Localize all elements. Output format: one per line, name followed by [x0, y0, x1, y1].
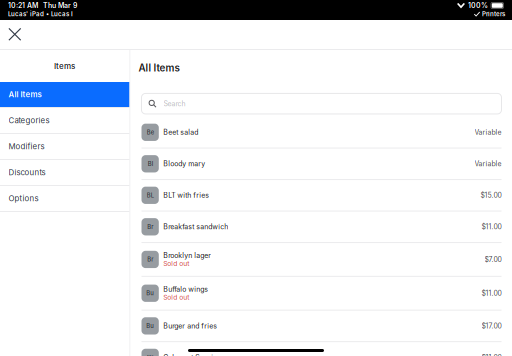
staticText: All Items [8, 90, 41, 99]
staticText: Items [54, 61, 75, 71]
staticText: Sold out [163, 260, 189, 268]
staticText: Discounts [8, 168, 45, 177]
button[interactable]: Ca [141, 342, 501, 356]
staticText: Bu [146, 290, 154, 297]
staticText: Br [147, 223, 153, 230]
staticText: $17.00 [481, 322, 501, 330]
staticText: BL [147, 192, 154, 199]
staticText: Bloody mary [163, 160, 205, 168]
staticText: Br [147, 256, 153, 263]
staticText: Cabernet Sauvignon [163, 353, 229, 356]
staticText: $15.00 [480, 191, 501, 199]
staticText: Brooklyn lager [163, 251, 211, 260]
button[interactable]: Bl [141, 148, 501, 179]
staticText: Bl [148, 160, 153, 167]
button[interactable]: Close [0, 19, 30, 49]
staticText: Printers [482, 10, 505, 18]
staticText: Beet salad [163, 128, 198, 136]
staticText: Options [8, 194, 38, 203]
button[interactable]: All Items [0, 82, 129, 107]
staticText: All Items [138, 62, 179, 74]
button[interactable]: Br [141, 243, 501, 276]
staticText: Variable [474, 128, 501, 136]
staticText: Sold out [163, 293, 189, 301]
staticText: Burger and fries [163, 322, 217, 330]
staticText: Search [163, 99, 185, 108]
staticText: Modifiers [8, 142, 44, 151]
staticText: BLT with fries [163, 191, 209, 199]
button[interactable]: Bu [141, 311, 501, 341]
staticText: Buffalo wings [163, 285, 208, 293]
staticText: $11.00 [481, 289, 501, 297]
staticText: $11.00 [481, 223, 501, 231]
staticText: Ca [147, 354, 154, 356]
staticText: Thu Mar 9 [43, 1, 77, 10]
button[interactable]: Bu [141, 277, 501, 310]
staticText: 100% [468, 1, 488, 10]
staticText: $11.00 [481, 353, 501, 356]
button[interactable]: Modifiers [0, 134, 129, 159]
button[interactable]: BL [141, 180, 501, 210]
button[interactable]: Discounts [0, 160, 129, 185]
button[interactable]: Categories [0, 108, 129, 133]
button[interactable]: Be [141, 117, 501, 147]
staticText: Breakfast sandwich [163, 223, 228, 231]
staticText: Lucas' iPad • Lucas I [8, 10, 73, 18]
button[interactable]: Br [141, 211, 501, 242]
staticText: Categories [8, 116, 49, 125]
staticText: 10:21 AM [8, 1, 38, 10]
staticText: Variable [474, 160, 501, 168]
staticText: Be [147, 129, 154, 136]
button[interactable]: Options [0, 186, 129, 211]
staticText: Bu [146, 322, 154, 329]
staticText: $7.00 [484, 255, 501, 264]
